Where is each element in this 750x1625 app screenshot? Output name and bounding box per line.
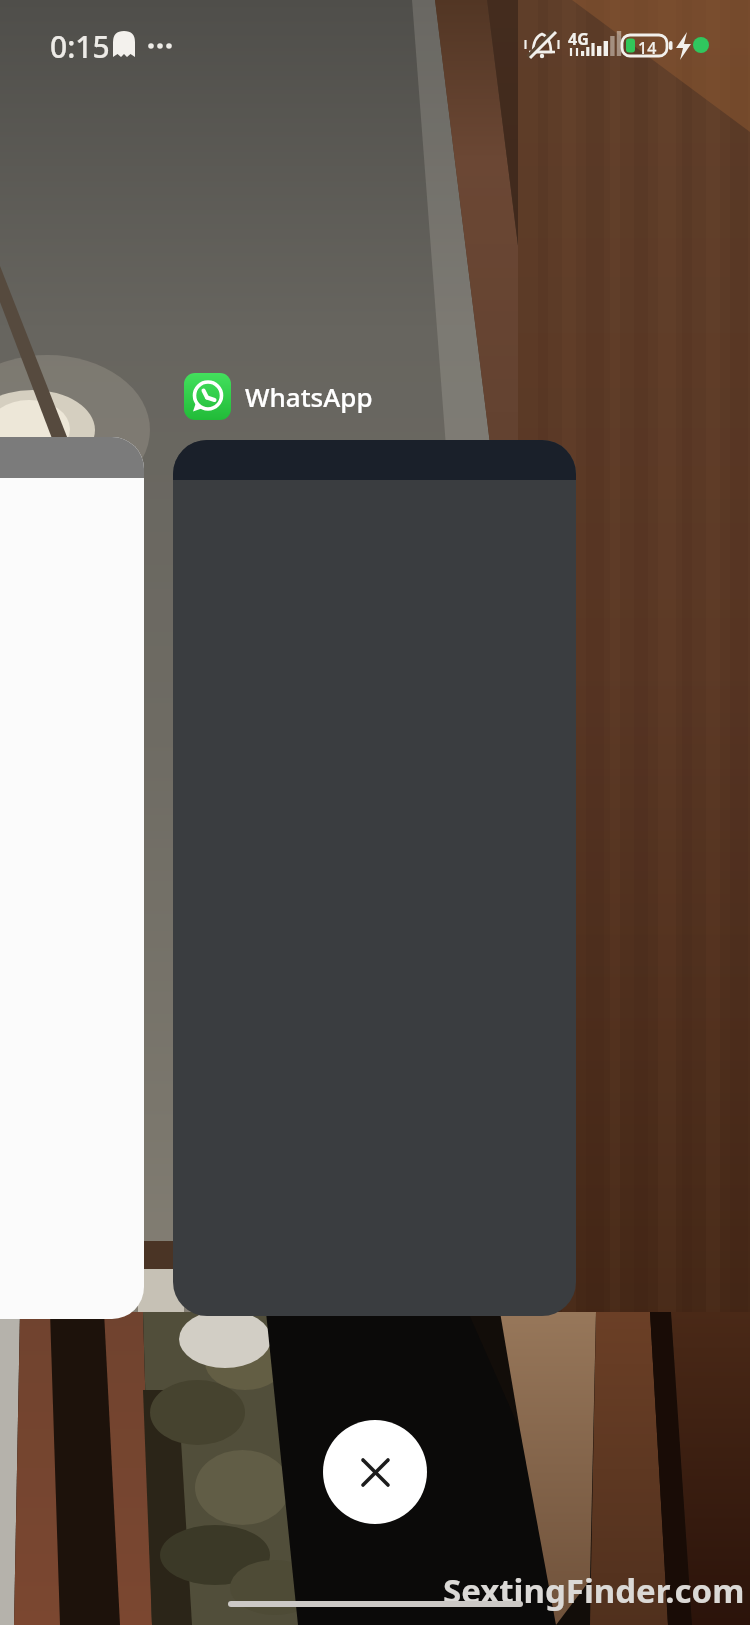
staticText: 0:15 [50, 26, 110, 67]
staticText: SextingFinder.com [443, 1568, 745, 1613]
button[interactable] [0, 437, 144, 1319]
button[interactable]: WhatsApp [184, 373, 373, 420]
staticText: 14 [638, 37, 657, 59]
staticText: WhatsApp [245, 379, 373, 414]
button[interactable] [173, 440, 576, 1316]
staticText: 4G [568, 28, 589, 50]
button[interactable] [323, 1420, 427, 1524]
